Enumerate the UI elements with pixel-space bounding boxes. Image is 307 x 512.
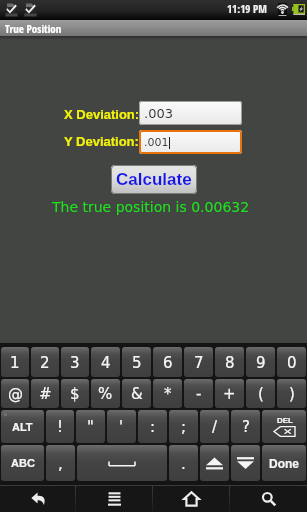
staticText: ': [119, 418, 124, 435]
staticText: *: [164, 385, 172, 402]
staticText: %: [98, 385, 113, 402]
button[interactable]: Next: [231, 445, 260, 481]
button[interactable]: Delete: [262, 410, 306, 443]
staticText: +: [223, 385, 236, 402]
staticText: $: [70, 385, 80, 402]
button[interactable]: :: [138, 410, 167, 443]
staticText: X Deviation:: [64, 107, 140, 122]
staticText: (: [258, 385, 264, 402]
button[interactable]: 3: [61, 347, 89, 377]
button[interactable]: 4: [91, 347, 120, 377]
button[interactable]: 8: [215, 347, 244, 377]
button[interactable]: 6: [153, 347, 182, 377]
staticText: 1: [10, 354, 20, 371]
button[interactable]: *: [153, 379, 182, 408]
button[interactable]: (: [246, 379, 275, 408]
button[interactable]: #: [31, 379, 59, 408]
button[interactable]: Calculate: [111, 165, 197, 194]
staticText: :: [150, 418, 156, 435]
button[interactable]: &: [122, 379, 151, 408]
staticText: ": [87, 418, 94, 435]
button[interactable]: +: [215, 379, 244, 408]
staticText: ;: [181, 418, 187, 435]
button[interactable]: ALT: [1, 410, 44, 443]
button[interactable]: 5: [122, 347, 151, 377]
staticText: ALT: [12, 421, 33, 433]
staticText: 8: [225, 354, 235, 371]
staticText: .: [181, 455, 186, 472]
staticText: /: [212, 418, 218, 435]
button[interactable]: 0: [277, 347, 306, 377]
staticText: Done: [269, 457, 299, 470]
staticText: -: [196, 385, 202, 402]
staticText: 2: [40, 354, 50, 371]
staticText: ?: [242, 418, 250, 435]
button[interactable]: .: [169, 445, 198, 481]
staticText: 4: [101, 354, 111, 371]
button[interactable]: ;: [169, 410, 198, 443]
button[interactable]: !: [46, 410, 74, 443]
staticText: 0: [287, 354, 297, 371]
button[interactable]: 2: [31, 347, 59, 377]
staticText: Calculate: [116, 170, 192, 189]
staticText: #: [39, 385, 52, 402]
button[interactable]: 1: [1, 347, 29, 377]
button[interactable]: ): [277, 379, 306, 408]
staticText: Y Deviation:: [64, 134, 139, 149]
staticText: &: [131, 385, 143, 402]
button[interactable]: Space: [77, 445, 167, 481]
other: Delete: [274, 416, 295, 437]
button[interactable]: ABC: [1, 445, 44, 481]
button[interactable]: .003: [139, 101, 242, 125]
button[interactable]: ,: [46, 445, 75, 481]
staticText: .003: [144, 106, 173, 121]
staticText: 9: [256, 354, 266, 371]
other: Space: [109, 459, 135, 467]
button[interactable]: Menu: [76, 485, 153, 512]
button[interactable]: Shift: [200, 445, 229, 481]
staticText: .001: [144, 136, 169, 149]
button[interactable]: 7: [184, 347, 213, 377]
button[interactable]: $: [61, 379, 89, 408]
staticText: The true position is 0.00632: [52, 199, 250, 215]
button[interactable]: /: [200, 410, 229, 443]
staticText: !: [57, 418, 64, 435]
button[interactable]: Done: [262, 445, 306, 481]
staticText: 11:19 PM: [227, 1, 267, 16]
other: Shift: [206, 456, 223, 470]
staticText: 5: [132, 354, 142, 371]
other: Next: [237, 456, 254, 470]
button[interactable]: ': [107, 410, 136, 443]
button[interactable]: ": [76, 410, 105, 443]
button[interactable]: Back: [0, 485, 76, 512]
staticText: @: [8, 385, 23, 402]
staticText: 3: [70, 354, 80, 371]
staticText: ,: [58, 455, 63, 472]
button[interactable]: .001: [139, 130, 242, 154]
staticText: 7: [194, 354, 204, 371]
button[interactable]: %: [91, 379, 120, 408]
staticText: ): [289, 385, 295, 402]
staticText: True Position: [5, 21, 62, 36]
button[interactable]: Home: [153, 485, 230, 512]
button[interactable]: -: [184, 379, 213, 408]
staticText: 6: [163, 354, 173, 371]
button[interactable]: @: [1, 379, 29, 408]
button[interactable]: ?: [231, 410, 260, 443]
button[interactable]: Search: [230, 485, 307, 512]
button[interactable]: 9: [246, 347, 275, 377]
staticText: ABC: [11, 457, 35, 469]
staticText: DEL: [277, 416, 293, 425]
